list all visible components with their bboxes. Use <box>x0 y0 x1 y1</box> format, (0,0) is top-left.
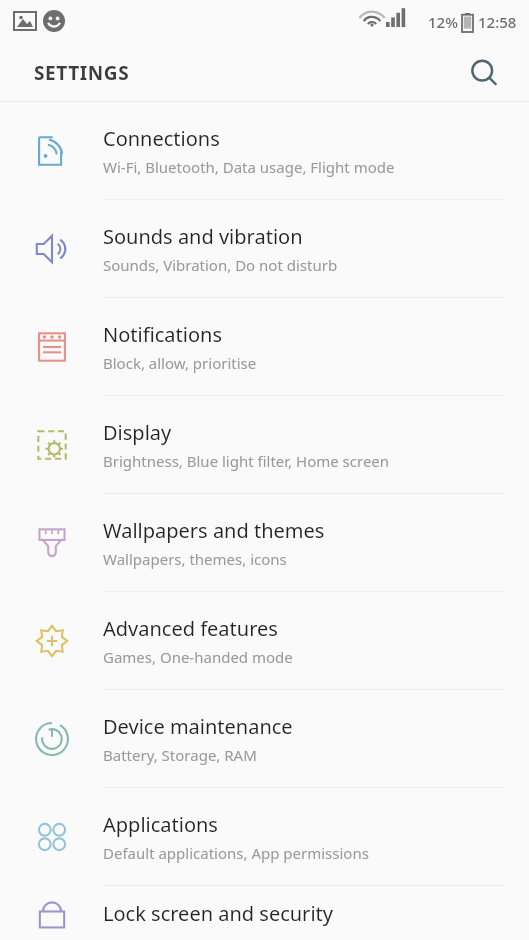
staticText: Default applications, App permissions <box>103 843 369 863</box>
button[interactable]: Applications <box>0 788 529 885</box>
staticText: Connections <box>103 125 220 152</box>
staticText: SETTINGS <box>34 60 130 86</box>
staticText: Notifications <box>103 321 222 348</box>
button[interactable]: Connections <box>0 102 529 199</box>
staticText: Display <box>103 419 172 446</box>
button[interactable]: Advanced features <box>0 592 529 689</box>
staticText: Lock screen and security <box>103 900 333 927</box>
button[interactable]: Lock screen and security <box>0 886 529 940</box>
staticText: Games, One-handed mode <box>103 647 293 667</box>
staticText: Battery, Storage, RAM <box>103 745 257 765</box>
staticText: Device maintenance <box>103 713 293 740</box>
staticText: Block, allow, prioritise <box>103 353 257 373</box>
button[interactable]: Device maintenance <box>0 690 529 787</box>
staticText: 12:58 <box>478 12 517 32</box>
staticText: Advanced features <box>103 615 278 642</box>
staticText: Brightness, Blue light filter, Home scre… <box>103 451 390 471</box>
button[interactable]: Search <box>461 50 507 96</box>
staticText: Sounds, Vibration, Do not disturb <box>103 255 338 275</box>
button[interactable]: Display <box>0 396 529 493</box>
staticText: Wi-Fi, Bluetooth, Data usage, Flight mod… <box>103 157 395 177</box>
button[interactable]: Wallpapers and themes <box>0 494 529 591</box>
staticText: Applications <box>103 811 218 838</box>
button[interactable]: Notifications <box>0 298 529 395</box>
staticText: 12% <box>428 12 458 32</box>
button[interactable]: Sounds and vibration <box>0 200 529 297</box>
staticText: Wallpapers and themes <box>103 517 325 544</box>
staticText: Wallpapers, themes, icons <box>103 549 287 569</box>
staticText: Sounds and vibration <box>103 223 303 250</box>
